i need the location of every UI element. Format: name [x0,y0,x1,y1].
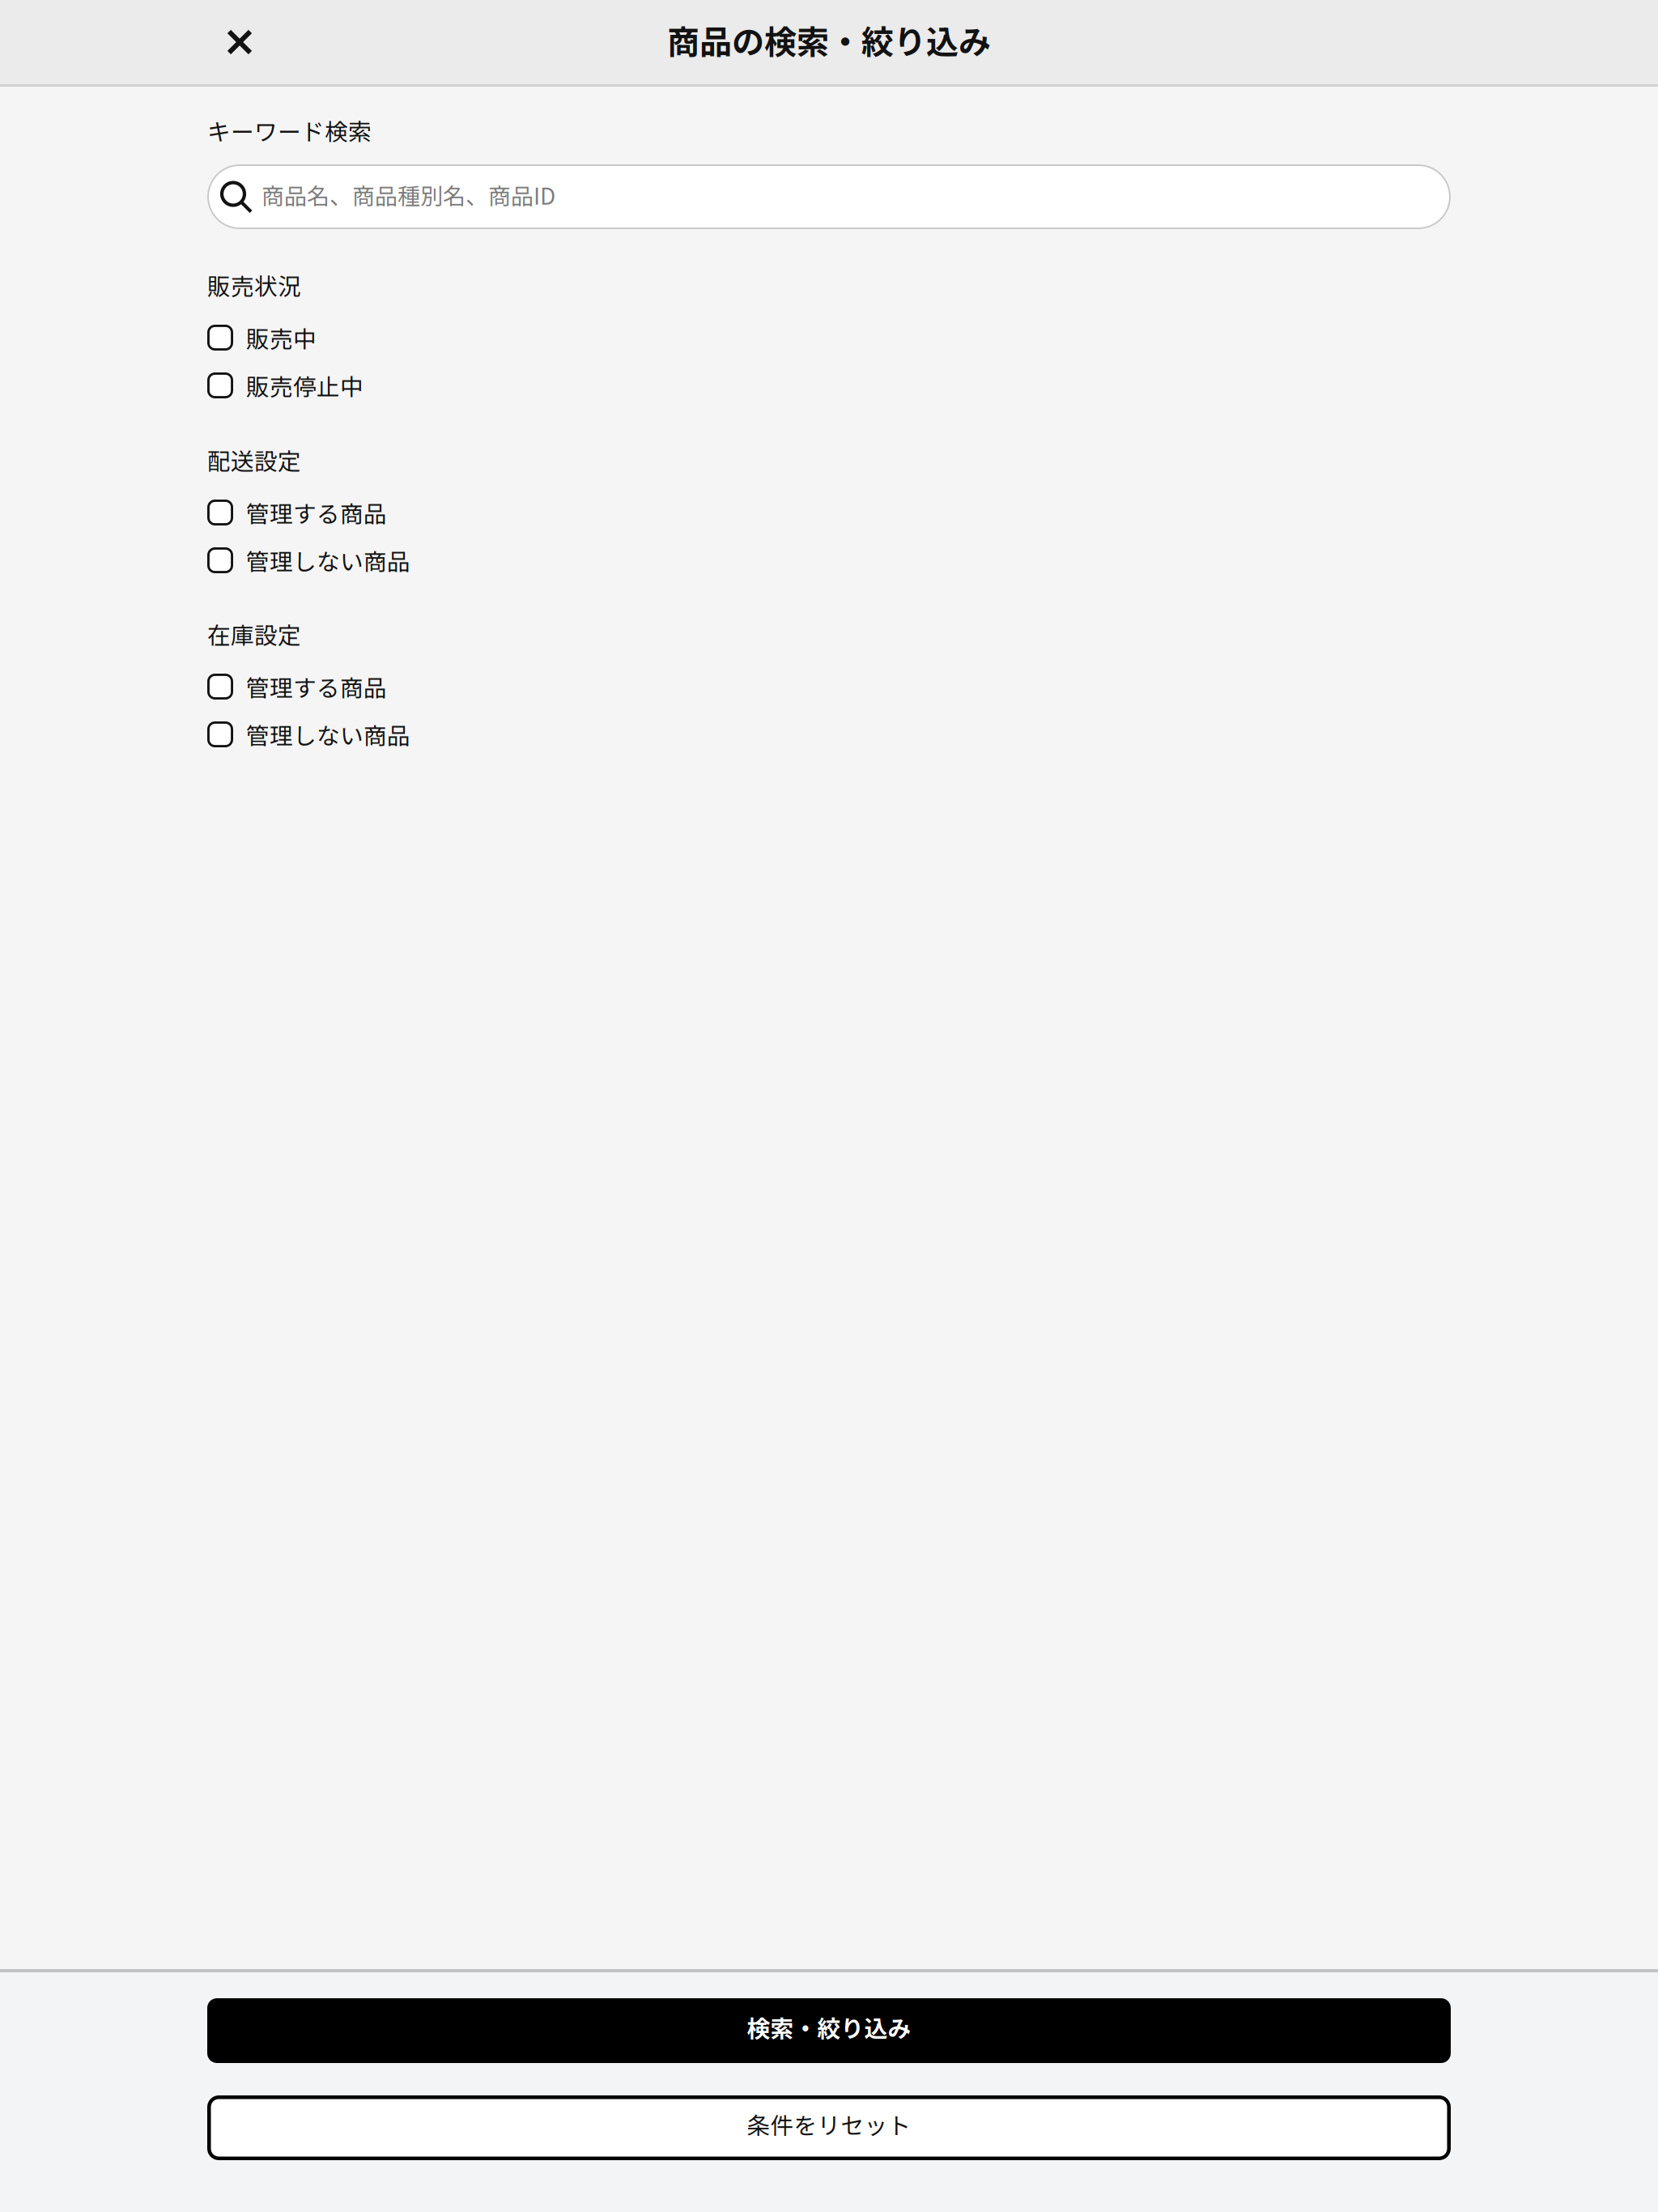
button[interactable]: 検索・絞り込み [207,1998,1451,2063]
staticText: 商品の検索・絞り込み [667,16,991,63]
staticText: 販売停止中 [246,369,363,402]
button[interactable]: 管理しない商品 [207,547,1451,573]
staticText: 販売状況 [207,268,301,302]
staticText: 配送設定 [207,443,301,477]
staticText: キーワード検索 [207,114,372,147]
button[interactable]: 条件をリセット [207,2095,1451,2160]
button[interactable]: 閉じる [201,3,278,81]
staticText: 管理しない商品 [246,718,410,751]
button[interactable]: 管理しない商品 [207,721,1451,747]
staticText: 条件をリセット [747,2107,911,2141]
button[interactable]: 販売中 [207,325,1451,351]
staticText: 管理する商品 [246,670,387,703]
staticText: 管理する商品 [246,496,387,529]
button[interactable]: 販売停止中 [207,372,1451,398]
staticText: 商品名、商品種別名、商品ID [261,178,555,211]
button[interactable]: 管理する商品 [207,500,1451,525]
staticText: 在庫設定 [207,617,301,651]
staticText: 検索・絞り込み [747,2010,911,2044]
button[interactable]: 管理する商品 [207,674,1451,700]
staticText: 販売中 [246,321,317,354]
button[interactable]: 商品名、商品種別名、商品ID [207,164,1451,229]
staticText: 管理しない商品 [246,543,410,577]
